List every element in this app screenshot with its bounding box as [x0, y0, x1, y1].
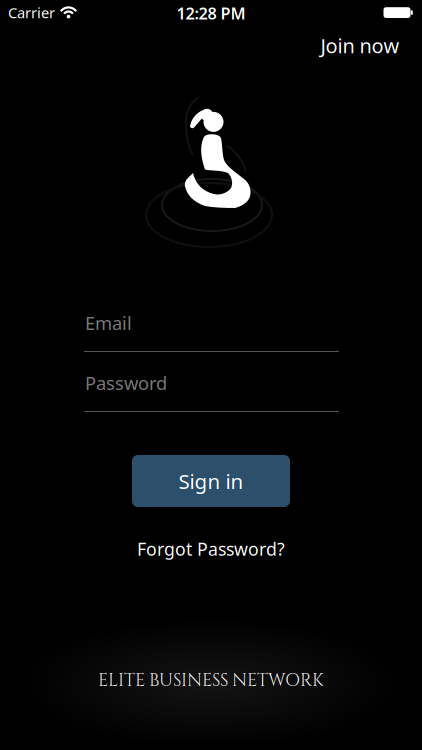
staticText: 12:28 PM	[176, 2, 245, 24]
staticText: Forgot Password?	[137, 537, 285, 561]
button[interactable]: Email	[84, 306, 339, 352]
button[interactable]: Forgot Password?	[137, 537, 285, 561]
staticText: Join now	[320, 32, 399, 59]
button[interactable]: Sign in	[132, 455, 290, 507]
staticText: Carrier	[8, 2, 55, 22]
staticText: Password	[85, 370, 167, 395]
button[interactable]: Password	[84, 366, 339, 412]
staticText: Sign in	[178, 467, 243, 495]
staticText: Email	[85, 310, 132, 335]
staticText: ELITE BUSINESS NETWORK	[98, 668, 324, 693]
button[interactable]: Join now	[320, 32, 399, 59]
